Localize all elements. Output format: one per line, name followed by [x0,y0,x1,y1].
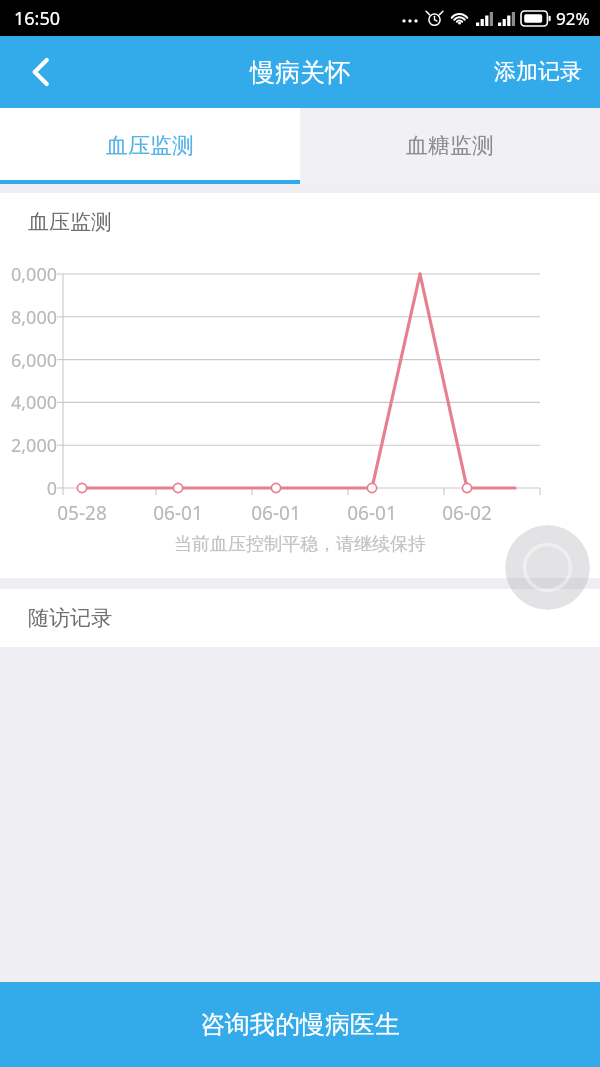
staticText: 血压监测 [28,209,112,235]
staticText: 06-01 [332,500,412,526]
staticText: 05-28 [42,500,122,526]
staticText: 06-01 [236,500,316,526]
staticText: 92% [556,7,590,30]
button[interactable]: 血糖监测 [300,108,600,184]
staticText: 0,000 [0,262,57,287]
button[interactable]: 血压监测 [0,108,300,184]
staticText: 06-01 [138,500,218,526]
staticText: 6,000 [0,348,57,373]
staticText: 血糖监测 [406,132,494,160]
staticText: 当前血压控制平稳，请继续保持 [0,533,600,556]
staticText: 06-02 [427,500,507,526]
staticText: 4,000 [0,390,57,415]
staticText: 随访记录 [28,605,112,631]
staticText: 慢病关怀 [250,57,350,88]
staticText: 添加记录 [494,58,582,86]
staticText: 8,000 [0,305,57,330]
staticText: 咨询我的慢病医生 [200,1009,400,1040]
button[interactable]: Assistive touch [505,525,590,610]
staticText: 0 [0,476,57,501]
button[interactable]: 添加记录 [476,36,600,108]
button[interactable]: Back [0,36,82,108]
button[interactable]: 咨询我的慢病医生 [0,982,600,1067]
staticText: 血压监测 [106,132,194,160]
staticText: 2,000 [0,433,57,458]
staticText: 16:50 [14,6,61,31]
